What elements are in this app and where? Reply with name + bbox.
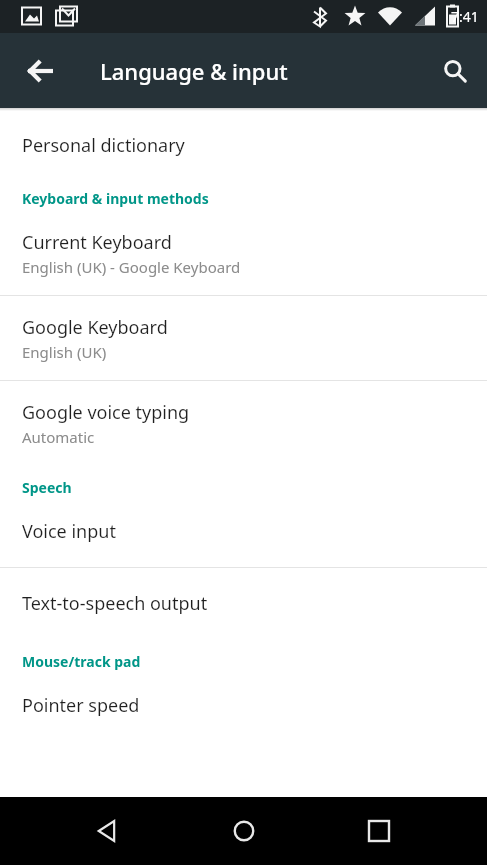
staticText: English (UK) xyxy=(22,342,107,362)
button[interactable]: Personal dictionary xyxy=(0,133,487,158)
button[interactable]: Back xyxy=(80,803,136,859)
button[interactable]: Google voice typing xyxy=(0,400,487,447)
staticText: Pointer speed xyxy=(22,693,140,718)
button[interactable]: Current Keyboard xyxy=(0,230,487,277)
staticText: Speech xyxy=(22,478,72,497)
staticText: Language & input xyxy=(100,56,288,86)
staticText: Personal dictionary xyxy=(22,133,185,158)
button[interactable]: Back xyxy=(12,43,68,99)
staticText: 7:41 xyxy=(451,7,479,26)
staticText: Voice input xyxy=(22,519,116,544)
staticText: Current Keyboard xyxy=(22,230,172,255)
staticText: Google voice typing xyxy=(22,400,190,425)
staticText: Automatic xyxy=(22,427,95,447)
staticText: Mouse/track pad xyxy=(22,652,141,671)
staticText: English (UK) - Google Keyboard xyxy=(22,257,241,277)
staticText: Google Keyboard xyxy=(22,315,168,340)
staticText: Text-to-speech output xyxy=(22,591,208,616)
button[interactable]: Home xyxy=(216,803,272,859)
button[interactable]: Text-to-speech output xyxy=(0,591,487,616)
button[interactable]: Recents xyxy=(351,803,407,859)
staticText: Keyboard & input methods xyxy=(22,189,209,208)
button[interactable]: Voice input xyxy=(0,519,487,544)
button[interactable]: Search xyxy=(427,43,483,99)
button[interactable]: Google Keyboard xyxy=(0,315,487,362)
button[interactable]: Pointer speed xyxy=(0,693,487,718)
